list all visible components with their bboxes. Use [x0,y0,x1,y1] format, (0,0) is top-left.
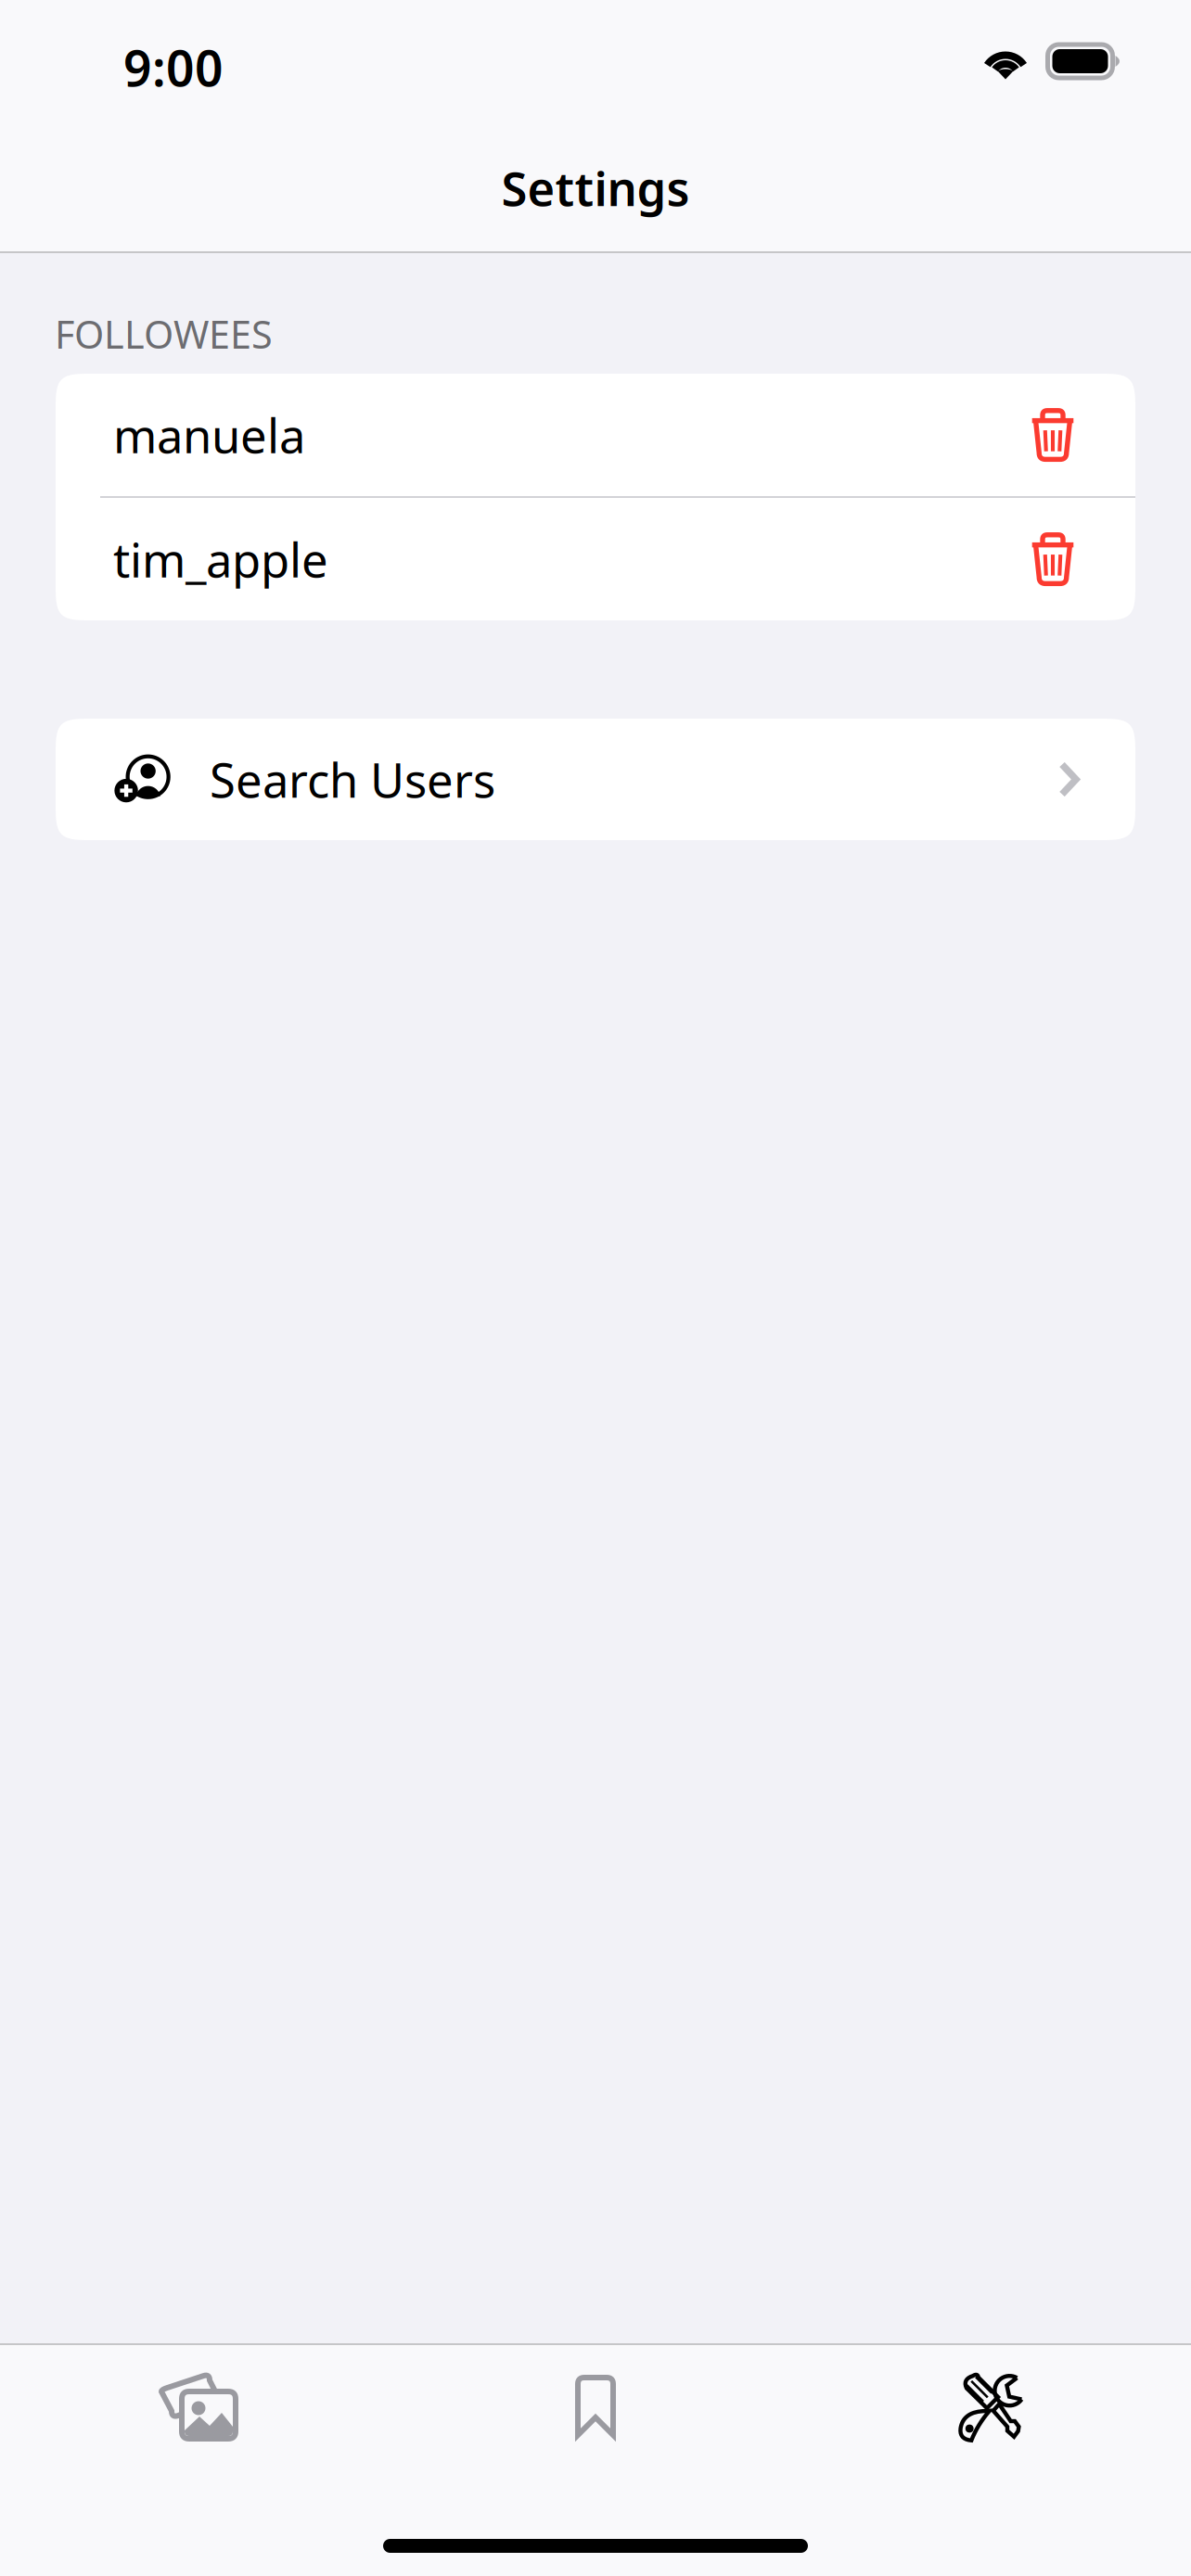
button[interactable]: Delete tim_apple [995,498,1110,620]
staticText: 9:00 [123,34,224,100]
staticText: tim_apple [113,528,328,590]
staticText: Search Users [210,748,495,811]
staticText: Settings [501,157,690,219]
button[interactable]: Search Users [56,719,1135,840]
button[interactable]: Photos [0,2360,397,2453]
button[interactable]: Settings [794,2360,1191,2453]
button[interactable]: Delete manuela [995,374,1110,496]
button[interactable]: Bookmarks [397,2360,794,2453]
staticText: manuela [113,404,305,466]
staticText: FOLLOWEES [55,308,273,359]
